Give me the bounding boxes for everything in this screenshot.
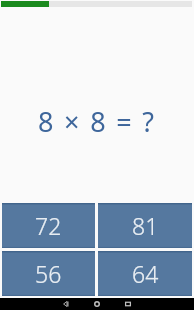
staticText: 72 [35,210,62,241]
button[interactable]: Recent apps [112,298,143,310]
button[interactable]: 64 [98,251,192,296]
staticText: 64 [132,258,159,289]
button[interactable]: Home [81,298,112,310]
staticText: 8 × 8 = ? [38,103,156,140]
button[interactable]: 81 [98,203,192,248]
button[interactable]: Back [50,298,81,310]
button[interactable]: 56 [2,251,95,296]
staticText: 81 [132,210,159,241]
staticText: 56 [35,258,62,289]
button[interactable]: 72 [2,203,95,248]
